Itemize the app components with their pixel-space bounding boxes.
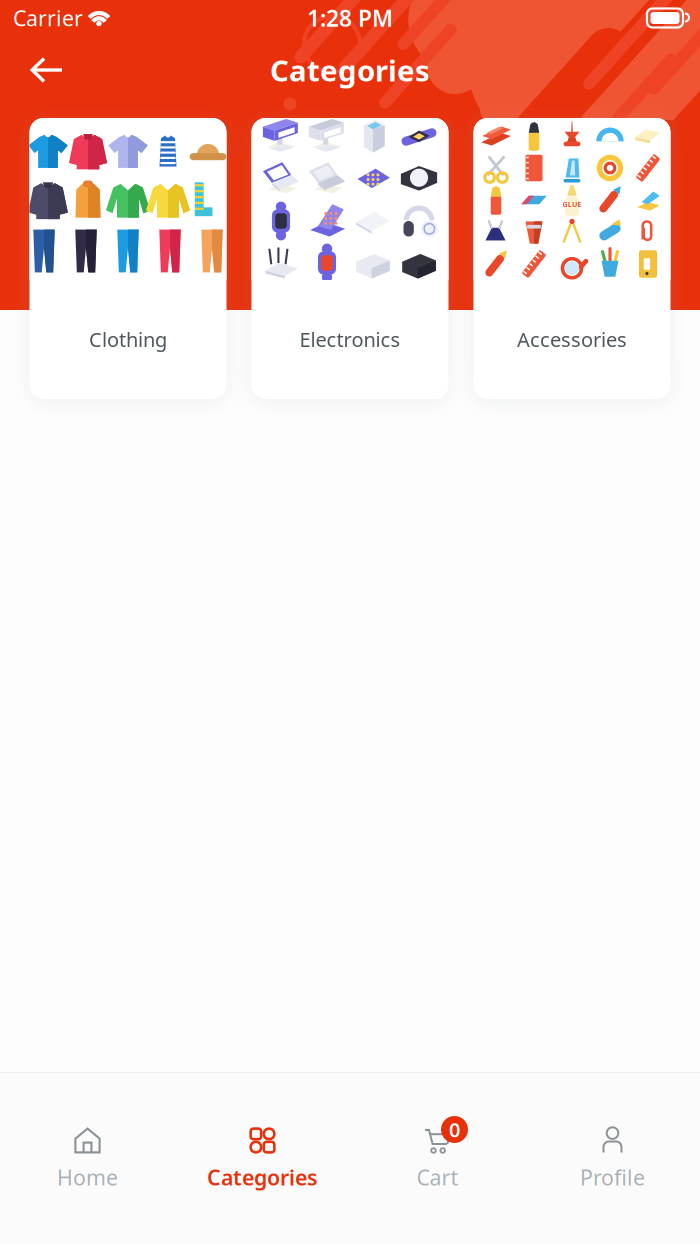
staticText: Accessories: [517, 326, 627, 353]
staticText: Clothing: [89, 326, 167, 353]
button[interactable]: Profile: [525, 1127, 700, 1191]
staticText: Electronics: [299, 326, 400, 353]
staticText: Carrier: [13, 4, 83, 32]
staticText: GLUE: [563, 200, 581, 208]
button[interactable]: Categories: [175, 1127, 350, 1191]
staticText: Categories: [207, 1163, 318, 1191]
staticText: 0: [449, 1116, 460, 1143]
staticText: Categories: [270, 50, 430, 89]
staticText: 1:28 PM: [307, 3, 393, 33]
button[interactable]: Back: [21, 45, 73, 95]
staticText: Cart: [416, 1163, 458, 1191]
button[interactable]: Home: [0, 1127, 175, 1191]
button[interactable]: 0: [350, 1127, 525, 1191]
button[interactable]: Electronics: [251, 118, 448, 399]
staticText: Home: [57, 1163, 118, 1191]
button[interactable]: Clothing: [29, 118, 226, 399]
staticText: Profile: [580, 1163, 645, 1191]
button[interactable]: GLUE: [473, 118, 670, 399]
